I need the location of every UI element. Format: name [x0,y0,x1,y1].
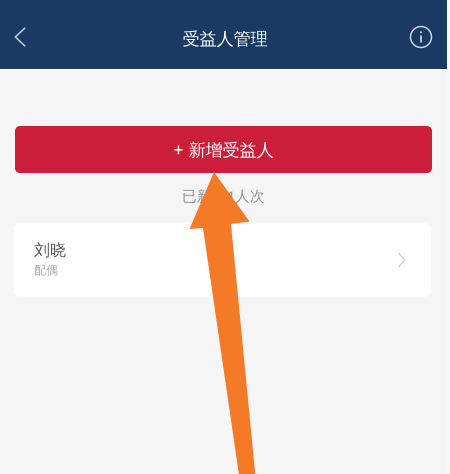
button[interactable]: Information [399,12,443,62]
button[interactable]: Back [0,12,41,62]
staticText: + 新增受益人 [173,138,273,161]
staticText: 已新增1人次 [182,186,265,205]
staticText: 配偶 [34,263,58,278]
button[interactable]: 刘晓 [14,223,431,296]
staticText: 刘晓 [34,240,66,260]
button[interactable]: + 新增受益人 [15,126,432,173]
staticText: 受益人管理 [182,28,267,50]
